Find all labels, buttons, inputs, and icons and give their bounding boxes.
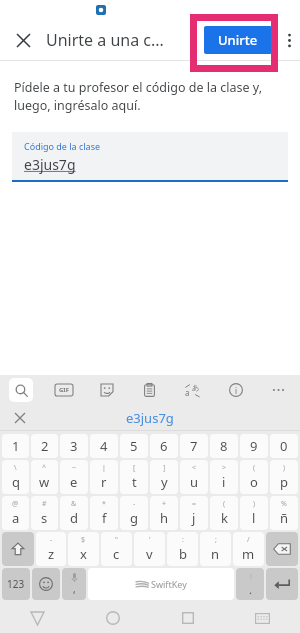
button[interactable]: GIF [42,375,85,405]
staticText: 3 [70,437,78,455]
button[interactable]: ; [200,532,231,566]
staticText: e3jus7g [126,409,174,427]
button[interactable]: Buscar [0,375,42,405]
button[interactable]: 8 [210,434,238,458]
staticText: あ [192,383,200,392]
staticText: d [70,509,78,527]
staticText: 0 [280,437,288,455]
button[interactable]: 0 [270,434,298,458]
button[interactable]: @ [2,496,29,530]
staticText: t [132,473,137,491]
button[interactable]: | [90,460,118,494]
button[interactable]: 1 [2,434,29,458]
button[interactable]: e3jus7g [0,405,300,431]
button[interactable]: / [233,532,264,566]
button[interactable]: Unirte [204,26,272,54]
button[interactable]: * [90,496,118,530]
button[interactable]: ^ [31,460,58,494]
staticText: ; [215,535,217,545]
button[interactable]: < [180,460,208,494]
button[interactable]: Mayúsculas [2,532,34,566]
button[interactable]: & [60,496,88,530]
staticText: . [249,582,252,597]
button[interactable]: Ocultar teclado [225,603,300,633]
button[interactable]: Información [214,375,257,405]
staticText: & [71,499,77,509]
staticText: : [182,535,184,545]
button[interactable]: 5 [120,434,148,458]
button[interactable]: ( [210,496,238,530]
button[interactable]: 123 [2,568,30,600]
button[interactable]: Más [257,375,300,405]
staticText: m [242,545,255,563]
staticText: * [102,499,106,509]
staticText: ) [253,499,256,509]
button[interactable]: : [167,532,198,566]
button[interactable]: Espacio [88,568,234,600]
staticText: x [80,545,87,563]
button[interactable]: ~ [60,460,88,494]
button[interactable]: 7 [180,434,208,458]
button[interactable]: Voz [62,568,86,600]
button[interactable]: $ [68,532,99,566]
button[interactable]: \ [2,460,29,494]
staticText: = [192,499,197,509]
button[interactable]: 3 [60,434,88,458]
button[interactable]: Cerrar [0,20,46,60]
button[interactable]: + [150,496,178,530]
button[interactable]: = [180,496,208,530]
staticText: h [160,509,169,527]
staticText: ( [223,499,226,509]
staticText: 123 [7,577,25,591]
button[interactable]: Borrar [266,532,298,566]
button[interactable]: Cerrar sugerencias [0,405,40,431]
button[interactable]: 4 [90,434,118,458]
button[interactable]: Más opciones [278,20,300,60]
button[interactable]: ! [236,568,264,600]
button[interactable]: Recientes [150,603,225,633]
staticText: j [192,509,196,527]
button[interactable]: 6 [150,434,178,458]
button[interactable]: Traducir [171,375,214,405]
staticText: p [280,473,288,491]
button[interactable]: Atrás [0,603,75,633]
button[interactable]: ' [134,532,165,566]
staticText: " [115,535,118,545]
button[interactable]: [ [120,460,148,494]
staticText: u [190,473,199,491]
button[interactable]: Código de la clase [12,132,288,180]
staticText: Código de la clase [24,140,101,152]
button[interactable]: Portapapeles [128,375,171,405]
staticText: 2 [41,437,49,455]
button[interactable]: " [101,532,132,566]
staticText: 1 [12,437,20,455]
staticText: b [179,545,187,563]
button[interactable]: Stickers [85,375,128,405]
button[interactable]: ) [240,496,268,530]
staticText: v [146,545,153,563]
staticText: 5 [130,437,138,455]
button[interactable]: ] [150,460,178,494]
staticText: Pídele a tu profesor el código de la cla… [14,79,286,114]
staticText: 6 [160,437,168,455]
staticText: # [42,499,47,509]
button[interactable]: - [120,496,148,530]
button[interactable]: # [31,496,58,530]
staticText: q [12,473,20,491]
button[interactable]: > [210,460,238,494]
button[interactable]: Emojis [32,568,60,600]
staticText: + [162,499,167,509]
staticText: o [250,473,258,491]
staticText: ] [163,463,166,473]
button[interactable]: - [36,532,66,566]
button[interactable]: 2 [31,434,58,458]
button[interactable]: ( [240,460,268,494]
button[interactable]: 9 [240,434,268,458]
button[interactable]: Intro [266,568,298,600]
button[interactable]: Inicio [75,603,150,633]
staticText: c [113,545,120,563]
staticText: i [222,473,226,491]
staticText: 7 [190,437,198,455]
button[interactable]: ) [270,460,298,494]
button[interactable]: % [270,496,298,530]
